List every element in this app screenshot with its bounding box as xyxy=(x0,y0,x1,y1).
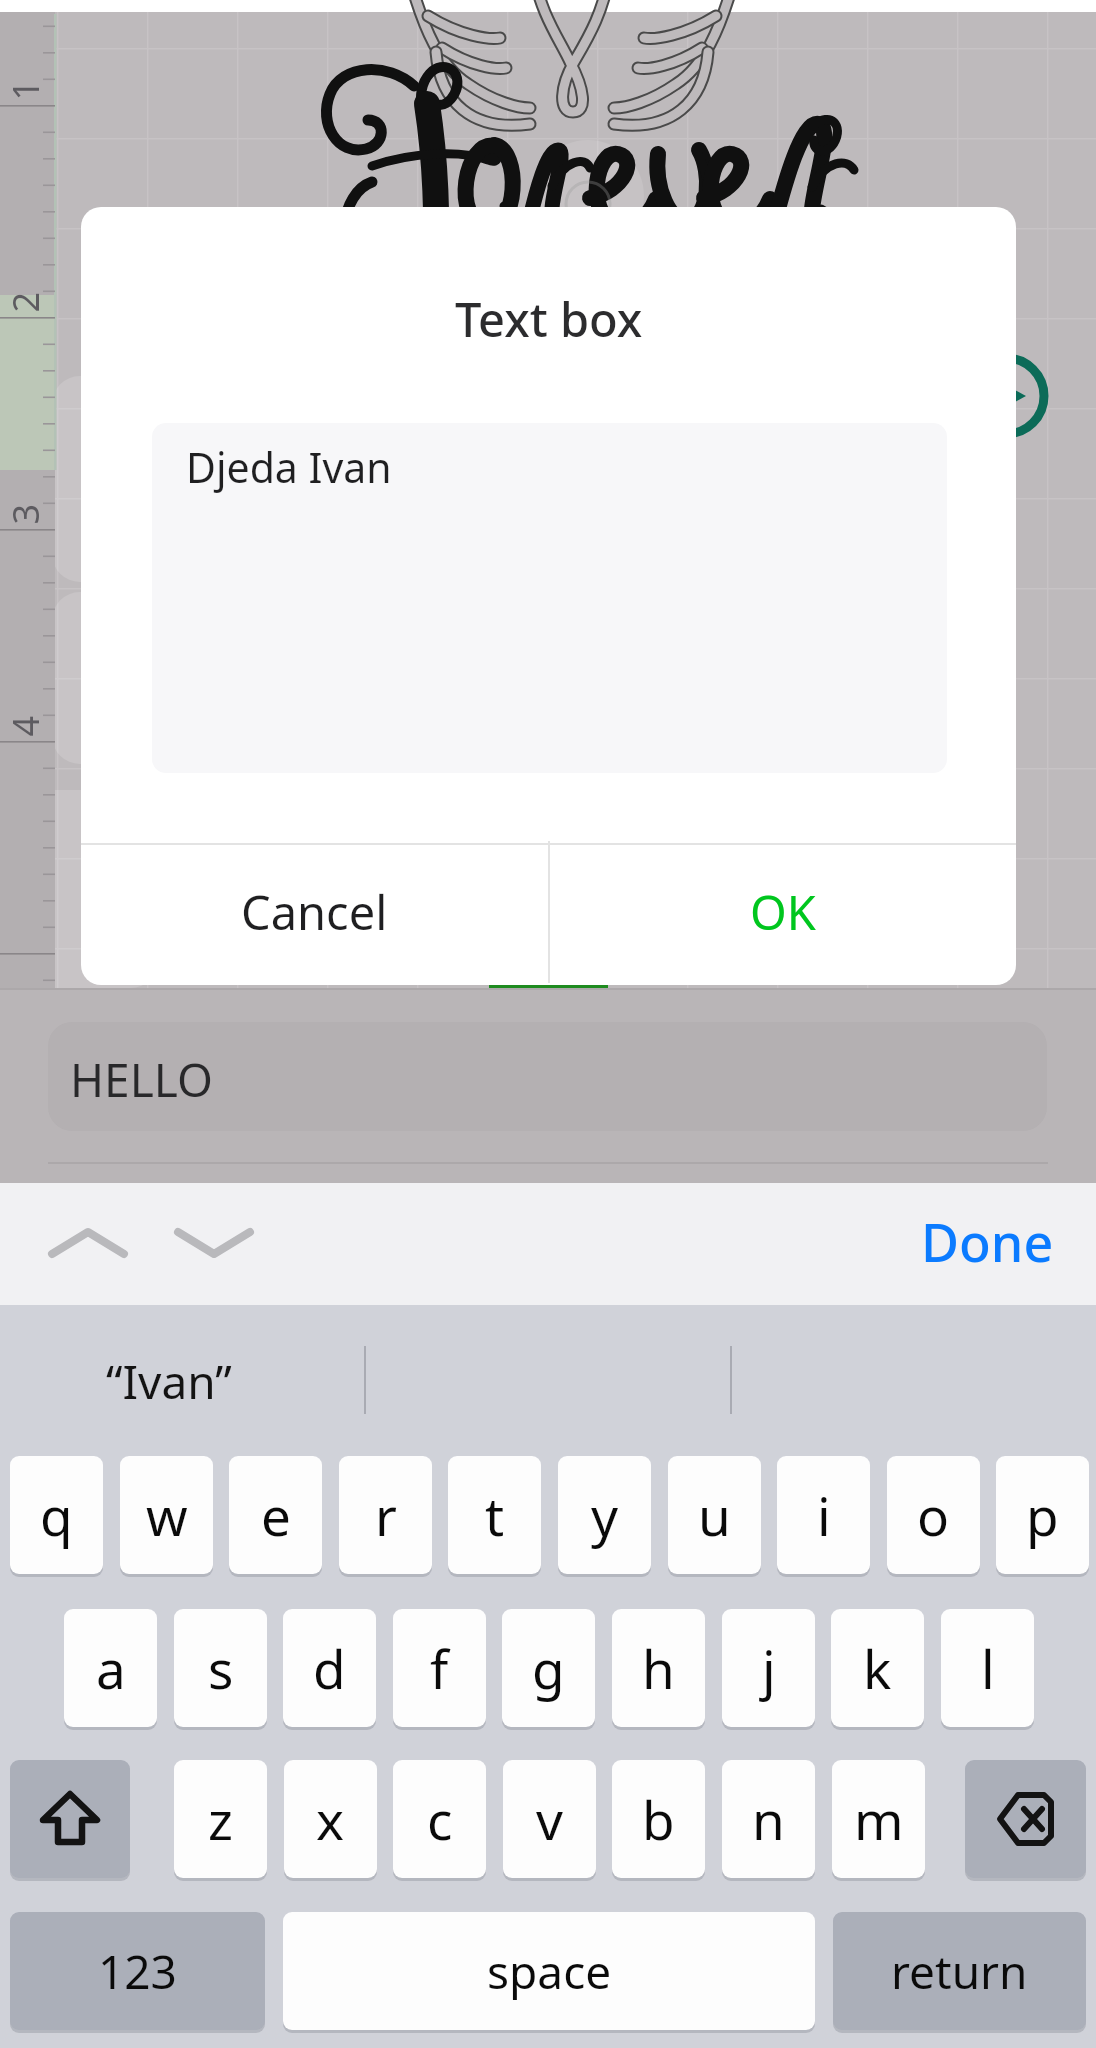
staticText: r xyxy=(375,1479,397,1551)
staticText: 123 xyxy=(98,1940,177,2003)
staticText: o xyxy=(917,1479,950,1551)
button[interactable]: Djeda Ivan xyxy=(152,423,947,773)
button[interactable]: i xyxy=(777,1456,870,1574)
staticText: g xyxy=(532,1632,565,1704)
button[interactable]: h xyxy=(612,1609,705,1727)
button[interactable]: j xyxy=(722,1609,815,1727)
button[interactable]: c xyxy=(393,1760,486,1878)
staticText: space xyxy=(487,1940,612,2003)
button[interactable]: Previous field xyxy=(40,1199,136,1295)
button[interactable]: r xyxy=(339,1456,432,1574)
staticText: y xyxy=(591,1479,619,1551)
button[interactable]: s xyxy=(174,1609,267,1727)
button[interactable]: 123 xyxy=(10,1912,265,2030)
staticText: m xyxy=(854,1783,904,1855)
button[interactable]: a xyxy=(64,1609,157,1727)
staticText: “Ivan” xyxy=(106,1350,232,1413)
button[interactable]: space xyxy=(283,1912,815,2030)
staticText: d xyxy=(313,1632,346,1704)
staticText: u xyxy=(698,1479,731,1551)
staticText: f xyxy=(430,1632,449,1704)
staticText: 4 xyxy=(0,715,44,736)
button[interactable]: z xyxy=(174,1760,267,1878)
button[interactable]: l xyxy=(941,1609,1034,1727)
button[interactable]: Backspace xyxy=(965,1760,1086,1878)
button[interactable]: o xyxy=(887,1456,980,1574)
button[interactable]: g xyxy=(502,1609,595,1727)
staticText: s xyxy=(208,1632,234,1704)
staticText: l xyxy=(981,1632,995,1704)
button[interactable]: m xyxy=(832,1760,925,1878)
button[interactable]: Done xyxy=(897,1180,1077,1302)
button[interactable]: Cancel xyxy=(81,841,548,983)
staticText: 3 xyxy=(0,503,44,524)
staticText: 1 xyxy=(0,79,44,100)
staticText: h xyxy=(642,1632,675,1704)
button[interactable]: b xyxy=(612,1760,705,1878)
button[interactable]: d xyxy=(283,1609,376,1727)
button[interactable]: Shift xyxy=(10,1760,130,1878)
staticText: z xyxy=(208,1783,233,1855)
staticText: c xyxy=(427,1783,453,1855)
button[interactable]: return xyxy=(833,1912,1086,2030)
button[interactable]: OK xyxy=(550,841,1016,983)
button[interactable]: x xyxy=(284,1760,377,1878)
button[interactable]: f xyxy=(393,1609,486,1727)
staticText: Text box xyxy=(455,287,643,351)
button[interactable]: e xyxy=(229,1456,322,1574)
button[interactable]: u xyxy=(668,1456,761,1574)
button[interactable]: y xyxy=(558,1456,651,1574)
staticText: Cancel xyxy=(241,880,388,944)
staticText: j xyxy=(762,1632,776,1704)
staticText: HELLO xyxy=(70,1048,213,1111)
button[interactable]: w xyxy=(120,1456,213,1574)
button[interactable]: HELLO xyxy=(48,1022,1047,1131)
staticText: return xyxy=(891,1940,1028,2003)
staticText: p xyxy=(1026,1479,1059,1551)
button[interactable]: p xyxy=(996,1456,1089,1574)
staticText: Done xyxy=(921,1206,1054,1277)
staticText: w xyxy=(146,1479,188,1551)
staticText: k xyxy=(863,1632,892,1704)
staticText: Djeda Ivan xyxy=(186,439,392,495)
staticText: e xyxy=(261,1479,291,1551)
button[interactable]: n xyxy=(722,1760,815,1878)
staticText: b xyxy=(642,1783,675,1855)
staticText: n xyxy=(752,1783,785,1855)
staticText: 2 xyxy=(0,291,44,312)
button[interactable]: q xyxy=(10,1456,103,1574)
button[interactable]: t xyxy=(448,1456,541,1574)
staticText: v xyxy=(536,1783,563,1855)
button[interactable]: Next field xyxy=(166,1199,262,1295)
staticText: OK xyxy=(750,880,816,944)
staticText: x xyxy=(316,1783,345,1855)
staticText: t xyxy=(485,1479,505,1551)
staticText: a xyxy=(96,1632,126,1704)
button[interactable]: Play xyxy=(960,350,1052,442)
button[interactable]: v xyxy=(503,1760,596,1878)
button[interactable]: k xyxy=(831,1609,924,1727)
staticText: i xyxy=(817,1479,831,1551)
staticText: q xyxy=(40,1479,73,1551)
